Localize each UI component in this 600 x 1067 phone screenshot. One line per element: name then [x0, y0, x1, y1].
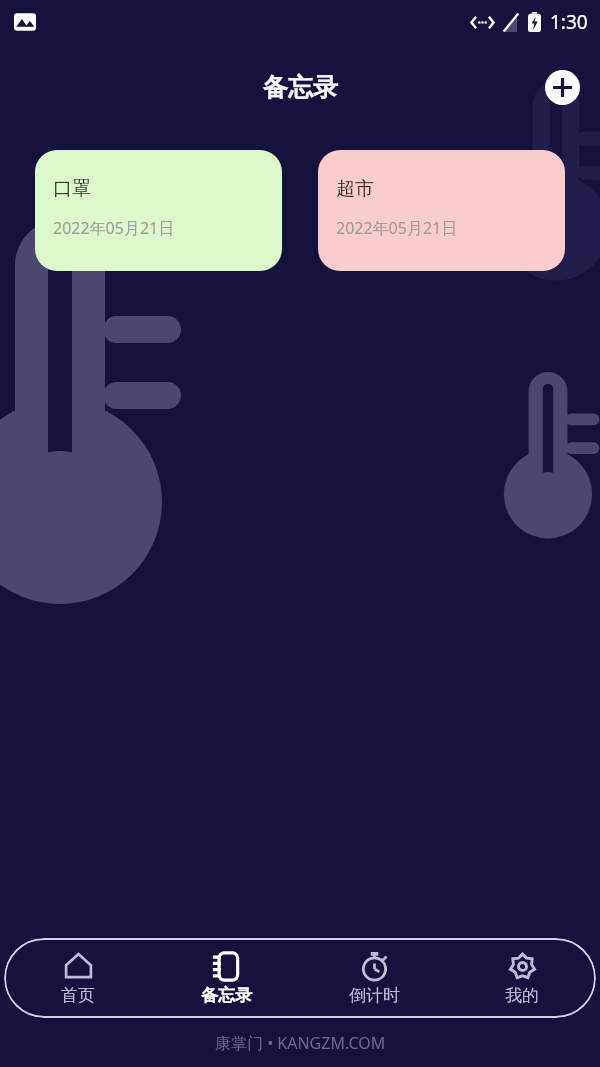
staticText: 倒计时: [349, 985, 400, 1006]
button[interactable]: 首页: [4, 938, 152, 1018]
button[interactable]: 我的: [448, 938, 596, 1018]
staticText: 1:30: [550, 9, 588, 35]
staticText: 备忘录: [201, 985, 252, 1006]
staticText: 首页: [61, 985, 95, 1006]
button[interactable]: Add memo: [545, 70, 580, 105]
staticText: 我的: [505, 985, 539, 1006]
staticText: 超市: [336, 177, 374, 201]
staticText: 2022年05月21日: [336, 217, 458, 239]
button[interactable]: 超市: [318, 150, 565, 271]
staticText: 2022年05月21日: [53, 217, 175, 239]
staticText: 口罩: [53, 177, 91, 201]
staticText: 备忘录: [263, 72, 338, 103]
button[interactable]: 备忘录: [152, 938, 300, 1018]
staticText: 康掌门 • KANGZM.COM: [215, 1032, 386, 1054]
button[interactable]: 倒计时: [300, 938, 448, 1018]
button[interactable]: 口罩: [35, 150, 282, 271]
